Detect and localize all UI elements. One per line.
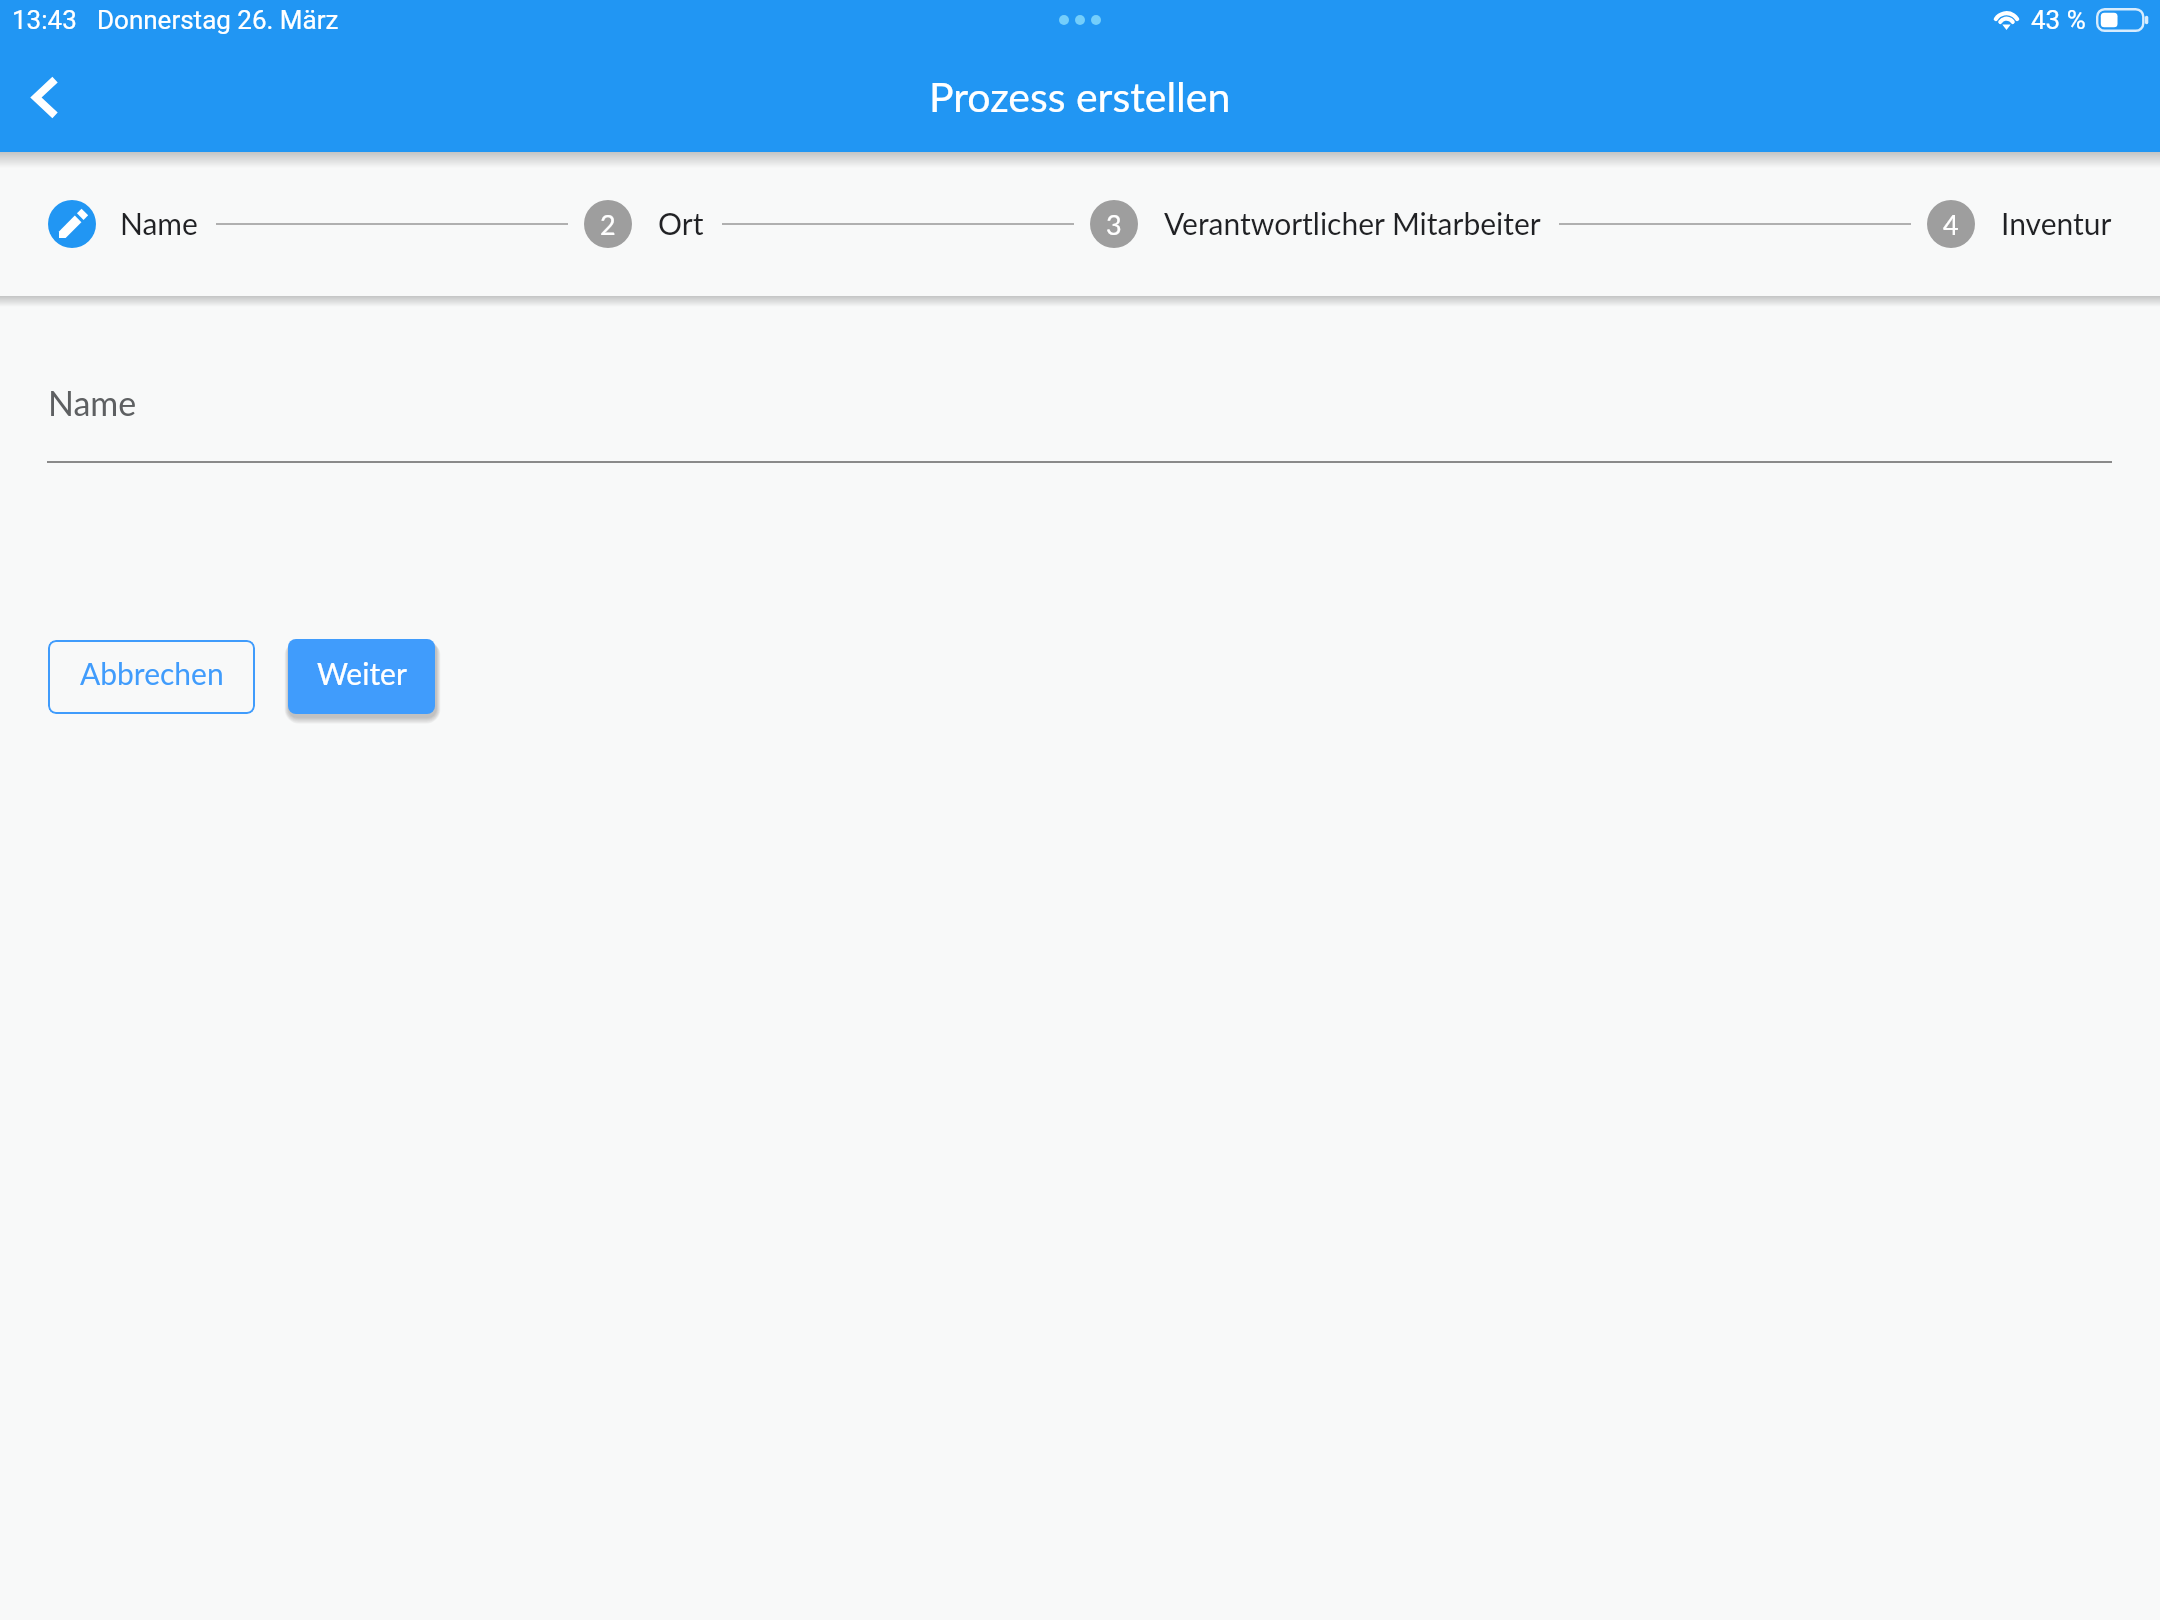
- staticText: Inventur: [2001, 205, 2112, 241]
- staticText: Name: [120, 205, 198, 241]
- button[interactable]: 4: [1927, 200, 2112, 248]
- staticText: Prozess erstellen: [929, 72, 1231, 121]
- button[interactable]: Abbrechen: [48, 640, 255, 714]
- staticText: Ort: [658, 205, 704, 241]
- staticText: 4: [1943, 208, 1959, 240]
- button[interactable]: Name: [48, 200, 198, 248]
- button[interactable]: 3: [1090, 200, 1541, 248]
- staticText: Donnerstag 26. März: [97, 5, 339, 35]
- staticText: Weiter: [317, 655, 407, 691]
- staticText: 2: [600, 208, 616, 240]
- staticText: 3: [1106, 208, 1122, 240]
- staticText: 43 %: [2031, 5, 2086, 35]
- button[interactable]: 2: [584, 200, 704, 248]
- staticText: Name: [48, 382, 137, 423]
- staticText: Verantwortlicher Mitarbeiter: [1164, 205, 1541, 241]
- button[interactable]: Weiter: [288, 639, 435, 714]
- button[interactable]: Back: [15, 67, 75, 127]
- staticText: 13:43: [12, 5, 77, 35]
- staticText: Abbrechen: [80, 655, 224, 691]
